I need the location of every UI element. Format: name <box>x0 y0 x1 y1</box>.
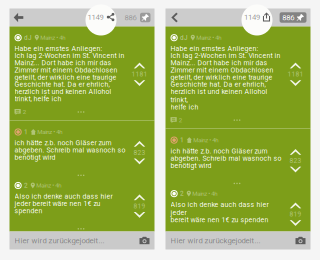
button[interactable]: Upvote <box>133 139 146 149</box>
staticText: Mainz... Dort habe ich mir das <box>14 59 111 67</box>
staticText: jeder bereit wäre nen 1€ zu <box>14 200 100 208</box>
button[interactable]: More <box>73 226 88 232</box>
button[interactable]: Downvote <box>133 156 146 166</box>
staticText: 2 <box>23 108 26 116</box>
button[interactable]: Camera <box>139 237 149 244</box>
staticText: abgeben. Schreib mal wasnoch so <box>14 146 125 154</box>
button[interactable]: Back <box>167 8 181 26</box>
staticText: Mainz • 4h <box>36 182 61 189</box>
staticText: herzlich ist und keinen Allohol <box>14 88 111 96</box>
staticText: ich hätte z.b. noch Gläser zum <box>14 139 111 147</box>
staticText: 1181 <box>131 70 147 78</box>
button[interactable]: More <box>230 180 244 186</box>
staticText: 1149 <box>244 12 260 22</box>
button[interactable]: Downvote <box>133 78 146 88</box>
staticText: Zimmer mit einem Obdachlosen <box>14 66 117 74</box>
staticText: abgeben. Schreib mal wasnoch so <box>170 154 281 162</box>
button[interactable]: Upvote <box>133 192 146 202</box>
staticText: 823 <box>289 157 301 165</box>
staticText: benötigt wird <box>14 153 55 161</box>
staticText: Mainz... Dort habe ich mir das <box>170 59 267 67</box>
staticText: Hier wird zurückgejodelt... <box>170 236 260 245</box>
staticText: Mainz • 4h <box>40 34 65 41</box>
staticText: 819 <box>289 210 301 218</box>
staticText: Mainz • 4h <box>193 137 218 144</box>
staticText: bereit wäre nen 1€ zu spenden <box>170 216 268 224</box>
staticText: 1181 <box>287 70 303 78</box>
staticText: Habe ein ernstes Anliegen: <box>14 45 102 53</box>
staticText: 819 <box>133 202 145 210</box>
button[interactable]: Upvote <box>289 61 302 70</box>
staticText: 2 <box>179 116 182 124</box>
staticText: 886 <box>282 13 294 22</box>
button[interactable]: More <box>230 234 244 240</box>
button[interactable]: Upvote <box>289 200 302 210</box>
staticText: Ich lag 2-Wochen im St. Vincent in <box>170 51 280 60</box>
staticText: Geschichte hat. Da er ehrlich, <box>170 80 265 88</box>
staticText: Zimmer mit einem Obdachlosen <box>170 66 273 74</box>
staticText: Also ich denke auch dass hier jeder <box>170 200 268 217</box>
staticText: dJ <box>180 34 188 41</box>
staticText: ich hätte z.b. noch Gläser zum <box>170 147 267 155</box>
button[interactable]: Back <box>11 8 25 26</box>
button[interactable]: More <box>73 172 88 178</box>
staticText: Mainz • 4h <box>192 190 217 197</box>
staticText: 1 <box>180 136 184 144</box>
staticText: Mainz • 4h <box>196 34 221 41</box>
staticText: dJ <box>24 34 32 41</box>
button[interactable]: Camera <box>295 237 305 244</box>
button[interactable]: More <box>230 117 244 123</box>
staticText: Ich lag 2-Wochen im St. Vincent in <box>14 51 124 60</box>
button[interactable]: Share <box>241 4 272 35</box>
staticText: helfe ich <box>170 103 198 111</box>
button[interactable]: Comments <box>14 108 26 116</box>
button[interactable]: More <box>73 109 88 115</box>
button[interactable]: Upvote <box>289 147 302 157</box>
button[interactable]: Downvote <box>289 78 302 88</box>
staticText: 886 <box>124 13 136 22</box>
button[interactable]: Pin post <box>140 13 150 22</box>
staticText: Hier wird zurückgejodelt... <box>14 236 104 245</box>
staticText: Also ich denke auch dass hier <box>14 192 112 200</box>
staticText: 1149 <box>88 12 104 22</box>
button[interactable]: Downvote <box>133 210 146 220</box>
button[interactable]: Comments <box>170 116 182 124</box>
staticText: spenden <box>14 207 42 215</box>
staticText: Mainz • 4h <box>37 128 62 135</box>
staticText: 2 <box>180 190 184 197</box>
staticText: geteilt, der wirklich eine traurige <box>170 73 272 81</box>
button[interactable]: Share <box>85 4 116 35</box>
staticText: herzlich ist und keinen Allohol trinkt, <box>170 88 267 104</box>
staticText: 1 <box>24 128 28 136</box>
staticText: trinkt, helfe ich <box>14 95 61 103</box>
button[interactable]: Pin post <box>280 12 306 23</box>
staticText: 823 <box>133 149 145 156</box>
staticText: benötigt wird <box>170 161 211 170</box>
button[interactable]: Upvote <box>133 61 146 70</box>
button[interactable]: Downvote <box>289 218 302 228</box>
staticText: Habe ein ernstes Anliegen: <box>170 45 258 53</box>
button[interactable]: Downvote <box>289 165 302 174</box>
staticText: geteilt, der wirklich eine traurige <box>14 73 116 81</box>
staticText: 2 <box>24 182 28 189</box>
staticText: Geschichte hat. Da er ehrlich, <box>14 80 109 88</box>
